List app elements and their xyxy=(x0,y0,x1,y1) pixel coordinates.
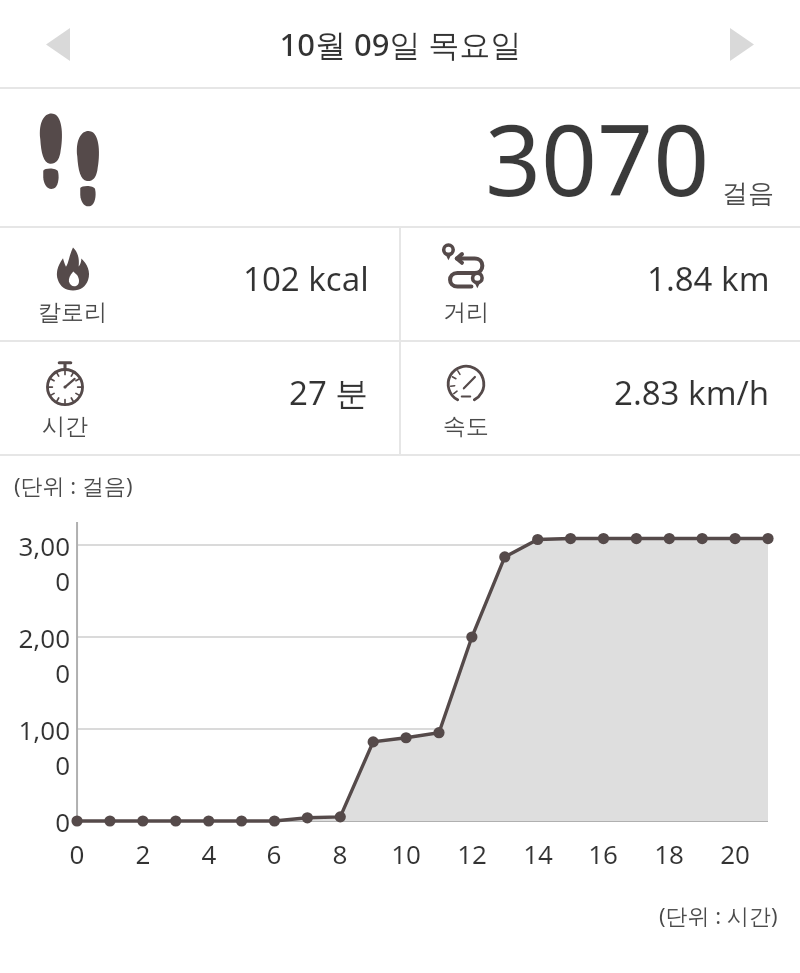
staticText: 14 xyxy=(518,836,558,871)
staticText: 0 xyxy=(57,836,97,871)
button[interactable]: Previous day xyxy=(16,7,100,81)
other: Time xyxy=(38,356,92,410)
staticText: (단위 : 시간) xyxy=(659,900,778,930)
staticText: 102 kcal xyxy=(243,256,369,301)
staticText: 10 xyxy=(386,836,426,871)
staticText: 3070 xyxy=(485,91,710,224)
other: Speed xyxy=(439,356,493,410)
staticText: 속도 xyxy=(443,412,489,441)
other: Calories xyxy=(46,242,100,296)
button[interactable]: Distance xyxy=(401,228,800,340)
staticText: 3,000 xyxy=(4,528,70,598)
staticText: 2 xyxy=(123,836,163,871)
staticText: 8 xyxy=(320,836,360,871)
staticText: 걸음 xyxy=(722,177,774,210)
staticText: 칼로리 xyxy=(38,298,107,327)
staticText: 2.83 km/h xyxy=(614,370,770,415)
button[interactable]: Next day xyxy=(700,7,784,81)
staticText: 6 xyxy=(254,836,294,871)
staticText: 20 xyxy=(715,836,755,871)
staticText: 거리 xyxy=(443,298,489,327)
staticText: 18 xyxy=(649,836,689,871)
staticText: 2,000 xyxy=(4,620,70,690)
button[interactable]: Calories xyxy=(0,228,399,340)
staticText: 4 xyxy=(189,836,229,871)
staticText: 1,000 xyxy=(4,712,70,782)
staticText: 12 xyxy=(452,836,492,871)
button[interactable]: Speed xyxy=(401,342,800,454)
staticText: 시간 xyxy=(42,412,88,441)
staticText: 16 xyxy=(583,836,623,871)
staticText: 10월 09일 목요일 xyxy=(279,23,522,65)
button[interactable]: Steps xyxy=(0,89,800,226)
staticText: 0 xyxy=(4,804,70,839)
other: Distance xyxy=(439,242,493,296)
staticText: (단위 : 걸음) xyxy=(14,470,133,500)
staticText: 1.84 km xyxy=(647,256,770,301)
other: Steps xyxy=(34,111,108,205)
staticText: 27 분 xyxy=(289,370,369,415)
button[interactable]: Time xyxy=(0,342,399,454)
